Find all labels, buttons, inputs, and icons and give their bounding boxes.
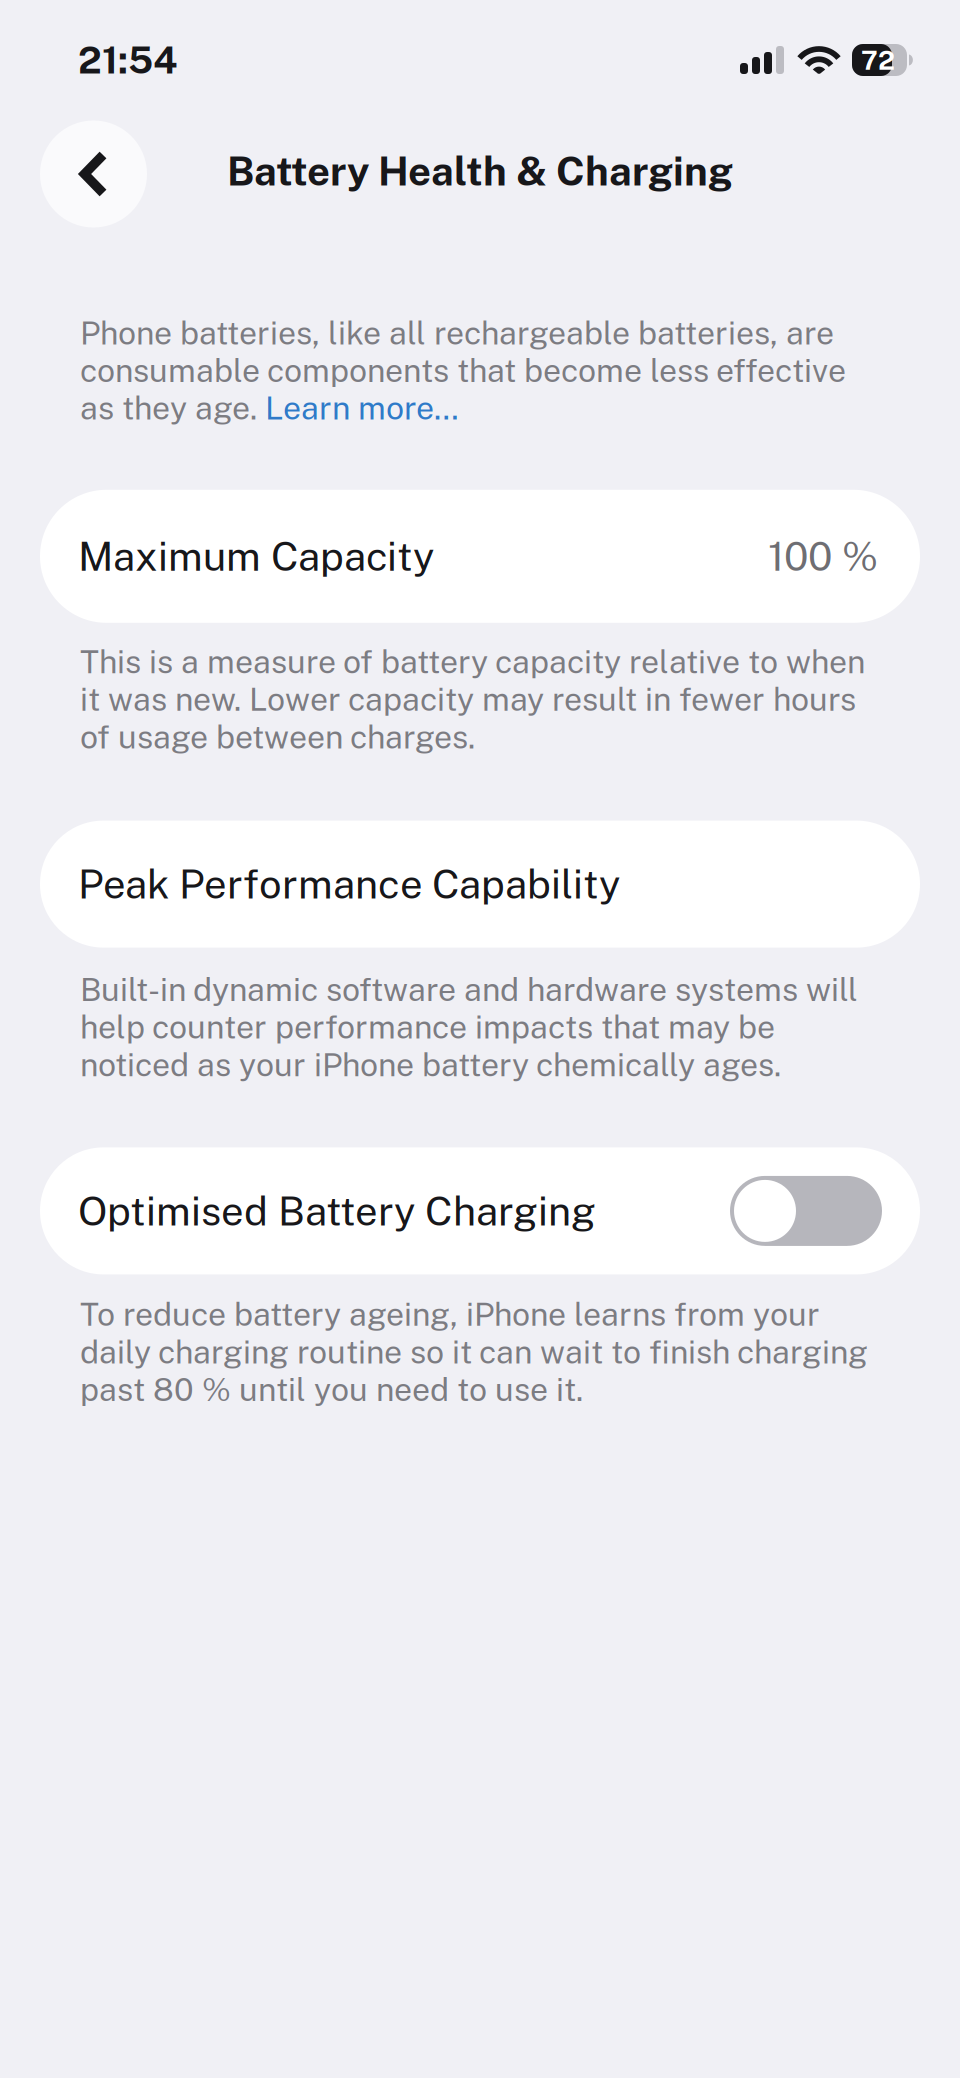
staticText: Peak Performance Capability [78,861,620,908]
staticText: Maximum Capacity [78,533,434,580]
staticText: Phone batteries, like all rechargeable b… [80,314,846,427]
staticText: Battery Health & Charging [227,147,733,194]
staticText: This is a measure of battery capacity re… [80,643,865,756]
staticText: 21:54 [78,38,177,82]
staticText: Built-in dynamic software and hardware s… [80,971,858,1083]
button[interactable]: Optimised Battery Charging [40,1147,920,1274]
staticText: 100 % [768,533,878,580]
button[interactable]: Peak Performance Capability [40,821,920,948]
staticText: 72 [861,44,895,76]
button[interactable]: Back [40,120,147,227]
staticText: To reduce battery ageing, iPhone learns … [80,1295,868,1408]
staticText: Optimised Battery Charging [78,1187,596,1234]
